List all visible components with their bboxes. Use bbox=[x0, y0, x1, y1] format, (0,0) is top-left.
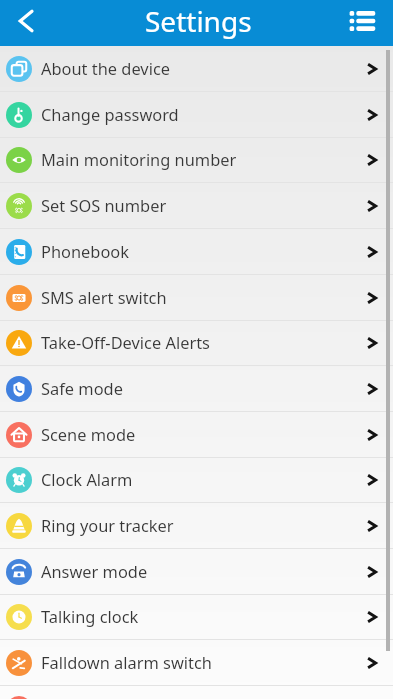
staticText: Main monitoring number bbox=[41, 148, 237, 170]
staticText: Take-Off-Device Alerts bbox=[41, 331, 210, 353]
staticText: About the device bbox=[41, 57, 170, 79]
staticText: Talking clock bbox=[41, 605, 139, 627]
button[interactable]: Scene mode bbox=[0, 412, 393, 458]
staticText: Change password bbox=[41, 103, 179, 125]
staticText: Phonebook bbox=[41, 240, 130, 262]
staticText: Scene mode bbox=[41, 423, 136, 445]
button[interactable]: SMS alert switch bbox=[0, 275, 393, 321]
button[interactable]: Ring your tracker bbox=[0, 503, 393, 549]
button[interactable]: Clock Alarm bbox=[0, 457, 393, 503]
staticText: Falldown alarm switch bbox=[41, 651, 212, 673]
button[interactable]: Menu bbox=[347, 0, 393, 46]
button[interactable]: Change password bbox=[0, 92, 393, 138]
staticText: Safe mode bbox=[41, 377, 123, 399]
button[interactable]: Safe mode bbox=[0, 366, 393, 412]
staticText: Settings bbox=[145, 2, 252, 40]
staticText: Ring your tracker bbox=[41, 514, 174, 536]
button[interactable]: About the device bbox=[0, 46, 393, 92]
staticText: Answer mode bbox=[41, 560, 148, 582]
button[interactable]: Falldown alarm switch bbox=[0, 640, 393, 686]
button[interactable]: Take-Off-Device Alerts bbox=[0, 320, 393, 366]
button[interactable]: Phonebook bbox=[0, 229, 393, 275]
button[interactable]: Set SOS number bbox=[0, 183, 393, 229]
staticText: SMS alert switch bbox=[41, 286, 167, 308]
button[interactable]: Back bbox=[0, 0, 46, 46]
button[interactable]: Answer mode bbox=[0, 549, 393, 595]
staticText: Clock Alarm bbox=[41, 468, 133, 490]
button[interactable] bbox=[0, 686, 393, 699]
button[interactable]: Main monitoring number bbox=[0, 137, 393, 183]
staticText: Set SOS number bbox=[41, 194, 167, 216]
button[interactable]: Talking clock bbox=[0, 594, 393, 640]
